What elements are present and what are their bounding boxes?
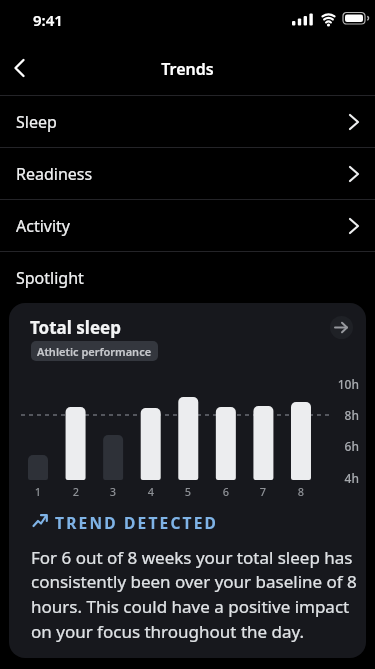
button[interactable]: Spotlight (0, 252, 375, 303)
staticText: 4h (326, 470, 359, 486)
staticText: TREND DETECTED (55, 512, 219, 533)
staticText: Spotlight (16, 267, 84, 289)
staticText: 6h (326, 438, 359, 454)
staticText: 10h (326, 376, 359, 392)
staticText: 8 (291, 484, 311, 499)
staticText: 4 (141, 484, 161, 499)
staticText: 3 (103, 484, 123, 499)
staticText: 8h (326, 407, 359, 423)
staticText: Total sleep (30, 316, 121, 339)
staticText: 2 (66, 484, 86, 499)
staticText: 9:41 (33, 10, 63, 30)
staticText: Trends (0, 58, 375, 80)
staticText: 6 (216, 484, 236, 499)
staticText: Readiness (16, 163, 93, 185)
staticText: 7 (253, 484, 273, 499)
staticText: 5 (178, 484, 198, 499)
button[interactable] (330, 316, 353, 339)
button[interactable]: Sleep (0, 96, 375, 147)
staticText: Sleep (16, 111, 57, 133)
button[interactable] (1, 52, 37, 84)
button[interactable]: Readiness (0, 148, 375, 199)
button[interactable]: Activity (0, 200, 375, 251)
staticText: Athletic performance (37, 344, 152, 359)
button[interactable]: Total sleep (9, 303, 366, 658)
staticText: 1 (28, 484, 48, 499)
staticText: For 6 out of 8 weeks your total sleep ha… (31, 546, 357, 643)
staticText: Activity (16, 215, 71, 237)
